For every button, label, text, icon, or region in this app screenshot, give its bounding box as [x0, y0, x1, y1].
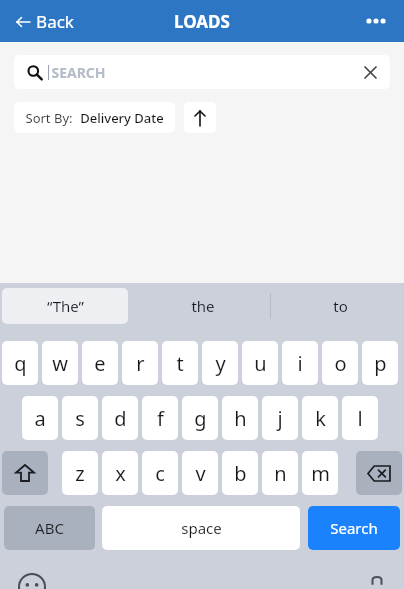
staticText: p [374, 350, 387, 377]
staticText: m [311, 460, 330, 487]
button[interactable]: the [136, 283, 270, 329]
button[interactable]: ABC [4, 506, 95, 550]
button[interactable]: j [262, 396, 298, 440]
button[interactable]: SEARCH [14, 55, 390, 89]
button[interactable]: space [102, 506, 300, 550]
staticText: l [357, 405, 363, 432]
staticText: k [315, 405, 326, 432]
button[interactable]: m [302, 451, 338, 495]
staticText: ABC [35, 518, 64, 538]
staticText: o [334, 350, 347, 377]
button[interactable]: Search [308, 506, 400, 550]
staticText: u [254, 350, 267, 377]
button[interactable]: h [222, 396, 258, 440]
button[interactable]: c [142, 451, 178, 495]
staticText: b [234, 460, 247, 487]
staticText: z [75, 460, 85, 487]
staticText: Delivery Date [80, 109, 164, 127]
button[interactable]: g [182, 396, 218, 440]
button[interactable]: x [102, 451, 138, 495]
button[interactable]: Emoji [18, 573, 46, 589]
button[interactable]: y [202, 341, 238, 385]
staticText: s [75, 405, 85, 432]
button[interactable]: f [142, 396, 178, 440]
button[interactable]: n [262, 451, 298, 495]
staticText: y [215, 350, 226, 377]
button[interactable]: Back [12, 6, 78, 37]
staticText: Back [36, 10, 74, 33]
staticText: j [277, 405, 283, 432]
button[interactable]: b [222, 451, 258, 495]
button[interactable]: z [62, 451, 98, 495]
staticText: d [114, 405, 127, 432]
staticText: SEARCH [51, 63, 106, 82]
staticText: g [194, 405, 207, 432]
button[interactable]: v [182, 451, 218, 495]
staticText: i [297, 350, 303, 377]
button[interactable]: w [42, 341, 78, 385]
button[interactable]: o [322, 341, 358, 385]
staticText: t [176, 350, 184, 377]
button[interactable]: Clear search [356, 58, 384, 86]
staticText: the [191, 296, 215, 316]
button[interactable]: “The” [2, 288, 128, 324]
staticText: r [136, 350, 145, 377]
button[interactable]: Backspace [356, 451, 402, 495]
button[interactable]: d [102, 396, 138, 440]
button[interactable]: q [2, 341, 38, 385]
button[interactable]: l [342, 396, 378, 440]
button[interactable]: k [302, 396, 338, 440]
staticText: c [155, 460, 165, 487]
button[interactable]: s [62, 396, 98, 440]
staticText: Sort By: [25, 109, 73, 127]
button[interactable]: Sort By: [14, 102, 175, 133]
button[interactable]: More options [356, 4, 396, 38]
staticText: n [274, 460, 287, 487]
button[interactable]: a [22, 396, 58, 440]
staticText: LOADS [174, 10, 230, 33]
button[interactable]: to [276, 283, 404, 329]
staticText: w [52, 350, 68, 377]
button[interactable]: e [82, 341, 118, 385]
staticText: to [333, 296, 348, 316]
staticText: Search [330, 518, 378, 538]
staticText: a [34, 405, 46, 432]
staticText: v [195, 460, 206, 487]
button[interactable]: r [122, 341, 158, 385]
staticText: “The” [47, 296, 84, 316]
staticText: x [115, 460, 126, 487]
button[interactable]: t [162, 341, 198, 385]
button[interactable]: Sort ascending [184, 102, 216, 133]
button[interactable]: u [242, 341, 278, 385]
button[interactable]: Shift [2, 451, 48, 495]
button[interactable]: p [362, 341, 398, 385]
button[interactable]: Voice input [368, 577, 386, 589]
button[interactable]: i [282, 341, 318, 385]
staticText: h [234, 405, 247, 432]
staticText: space [181, 518, 222, 538]
staticText: q [14, 350, 27, 377]
staticText: e [94, 350, 106, 377]
staticText: f [157, 405, 164, 432]
